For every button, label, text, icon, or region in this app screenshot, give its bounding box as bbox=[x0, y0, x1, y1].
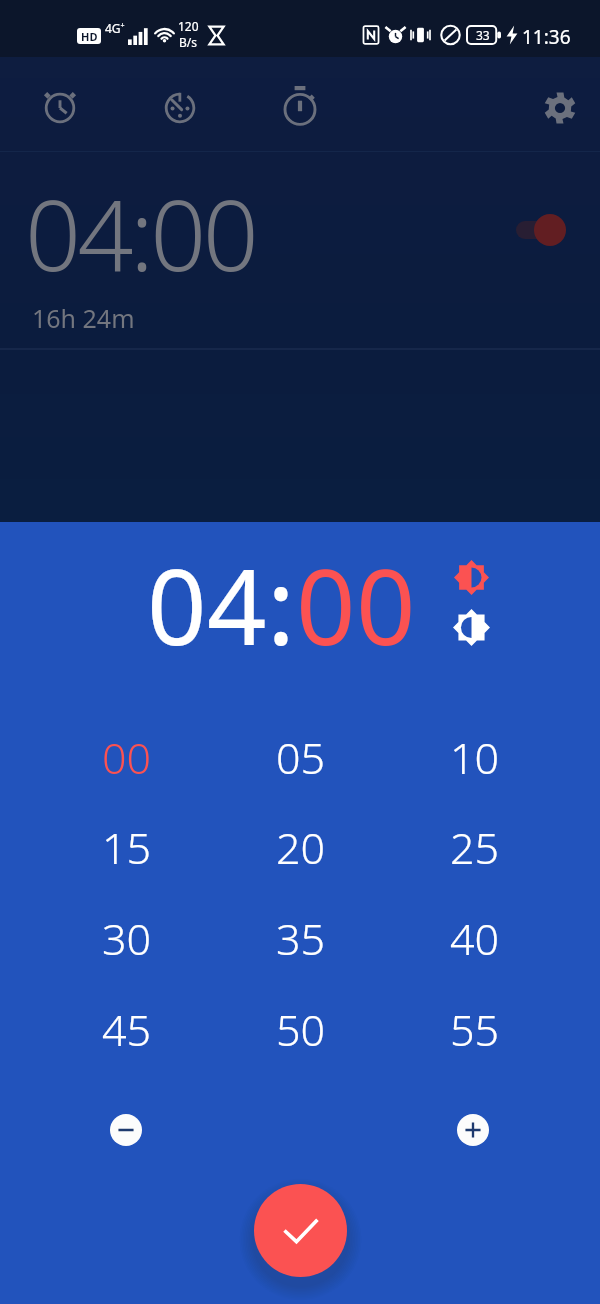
button[interactable]: 04:00 bbox=[0, 152, 600, 348]
staticText: HD bbox=[81, 29, 98, 44]
staticText: 11:36 bbox=[522, 24, 571, 50]
staticText: 50 bbox=[276, 1000, 326, 1059]
staticText: 20 bbox=[276, 818, 326, 877]
button[interactable]: 05 bbox=[243, 723, 359, 791]
button[interactable]: Toggle alarm bbox=[513, 210, 571, 250]
button[interactable]: 00 bbox=[296, 534, 416, 676]
button[interactable]: 15 bbox=[69, 813, 185, 881]
staticText: 30 bbox=[102, 909, 152, 968]
staticText: 16h 24m bbox=[32, 301, 135, 335]
button[interactable]: 55 bbox=[417, 995, 533, 1063]
button[interactable]: 40 bbox=[417, 904, 533, 972]
button[interactable]: AM bbox=[445, 551, 497, 603]
button[interactable]: 35 bbox=[243, 904, 359, 972]
staticText: 4G⁺ bbox=[105, 20, 125, 36]
staticText: 33 bbox=[476, 27, 490, 43]
button[interactable]: PM bbox=[445, 601, 497, 653]
button[interactable]: 25 bbox=[417, 813, 533, 881]
staticText: 04:00 bbox=[25, 166, 256, 299]
button[interactable]: Alarms bbox=[26, 74, 94, 142]
button[interactable]: 10 bbox=[417, 723, 533, 791]
staticText: 10 bbox=[450, 728, 500, 787]
staticText: 55 bbox=[450, 1000, 500, 1059]
staticText: 15 bbox=[102, 818, 152, 877]
button[interactable]: Settings bbox=[526, 74, 594, 142]
staticText: : bbox=[267, 534, 296, 676]
staticText: 25 bbox=[450, 818, 500, 877]
staticText: 120 bbox=[178, 18, 199, 34]
staticText: 35 bbox=[276, 909, 326, 968]
staticText: 04 bbox=[147, 534, 267, 676]
staticText: B/s bbox=[179, 34, 198, 50]
button[interactable]: Decrease bbox=[110, 1114, 142, 1146]
button[interactable]: 50 bbox=[243, 995, 359, 1063]
button[interactable]: 45 bbox=[69, 995, 185, 1063]
button[interactable]: 30 bbox=[69, 904, 185, 972]
staticText: 40 bbox=[450, 909, 500, 968]
button[interactable]: 00 bbox=[69, 723, 185, 791]
staticText: 00 bbox=[296, 534, 416, 676]
button[interactable]: Confirm bbox=[254, 1184, 347, 1277]
button[interactable]: 04 bbox=[147, 534, 267, 676]
button[interactable]: 20 bbox=[243, 813, 359, 881]
button[interactable]: Stopwatch bbox=[266, 74, 334, 142]
staticText: 45 bbox=[102, 1000, 152, 1059]
button[interactable]: World clock bbox=[146, 74, 214, 142]
staticText: 05 bbox=[276, 728, 326, 787]
staticText: 00 bbox=[102, 728, 152, 787]
button[interactable]: Increase bbox=[457, 1114, 489, 1146]
